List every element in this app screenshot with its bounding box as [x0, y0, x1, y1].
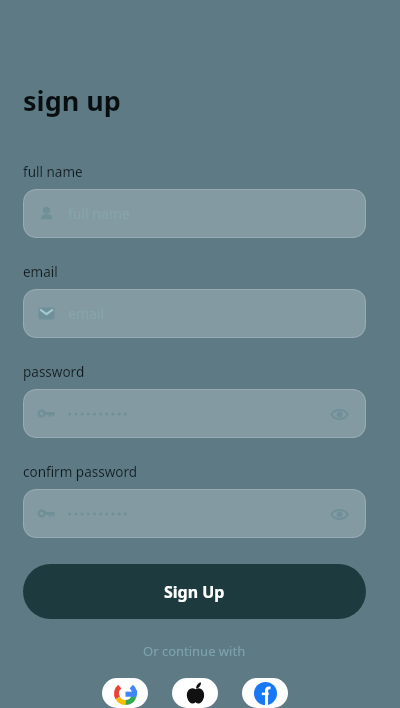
staticText: email — [23, 263, 58, 281]
staticText: Or continue with — [143, 642, 246, 660]
staticText: Sign Up — [164, 581, 225, 603]
button[interactable]: Toggle password visibility — [23, 489, 366, 538]
button[interactable]: full name — [23, 189, 366, 238]
button[interactable]: Toggle password visibility — [326, 401, 352, 427]
staticText: full name — [23, 163, 83, 181]
button[interactable]: Toggle password visibility — [23, 389, 366, 438]
staticText: confirm password — [23, 463, 138, 481]
button[interactable]: Sign up with Facebook — [242, 678, 288, 708]
button[interactable]: Sign up with Apple — [172, 678, 218, 708]
button[interactable]: Sign up with Google — [102, 678, 148, 708]
staticText: full name — [68, 204, 130, 223]
button[interactable]: Sign Up — [23, 564, 366, 619]
button[interactable]: Toggle password visibility — [326, 501, 352, 527]
staticText: sign up — [23, 82, 121, 119]
staticText: password — [23, 363, 85, 381]
button[interactable]: email — [23, 289, 366, 338]
staticText: email — [68, 304, 105, 323]
